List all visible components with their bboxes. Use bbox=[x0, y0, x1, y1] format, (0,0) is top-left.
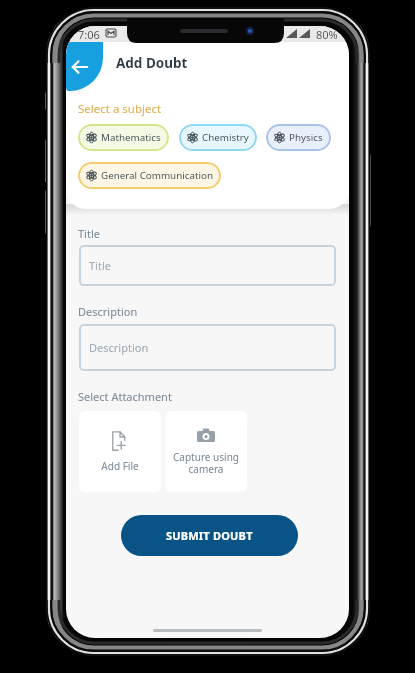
button[interactable]: Add File bbox=[79, 411, 161, 492]
staticText: Title bbox=[89, 258, 111, 273]
staticText: SUBMIT DOUBT bbox=[166, 528, 253, 543]
staticText: Select a subject bbox=[78, 101, 162, 117]
staticText: Description bbox=[78, 304, 138, 319]
button[interactable]: Mathematics bbox=[78, 124, 169, 151]
staticText: Add File bbox=[101, 459, 139, 473]
button[interactable]: Physics bbox=[266, 124, 331, 151]
button[interactable]: Capture using camera bbox=[165, 411, 247, 492]
staticText: Title bbox=[78, 226, 100, 241]
button[interactable]: Chemistry bbox=[179, 124, 257, 151]
staticText: Description bbox=[89, 340, 149, 355]
staticText: Capture using camera bbox=[173, 450, 239, 476]
staticText: Mathematics bbox=[101, 131, 161, 144]
button[interactable]: Back bbox=[66, 42, 103, 91]
button[interactable]: Description bbox=[79, 324, 336, 371]
button[interactable]: SUBMIT DOUBT bbox=[121, 515, 298, 556]
staticText: Physics bbox=[289, 131, 323, 144]
staticText: Select Attachment bbox=[78, 389, 172, 404]
staticText: 7:06 bbox=[78, 27, 100, 42]
staticText: Add Doubt bbox=[116, 54, 188, 72]
button[interactable]: Title bbox=[79, 245, 336, 286]
button[interactable]: General Communication bbox=[78, 162, 221, 189]
staticText: 80% bbox=[316, 27, 338, 42]
staticText: General Communication bbox=[101, 169, 213, 182]
staticText: Chemistry bbox=[202, 131, 249, 144]
